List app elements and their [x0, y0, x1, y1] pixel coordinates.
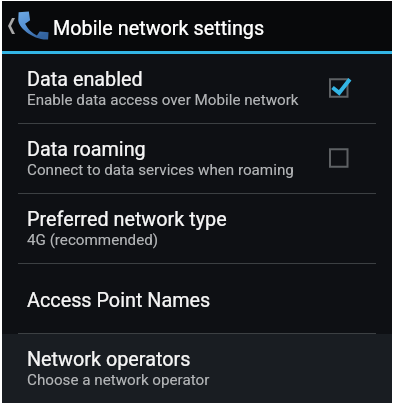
button[interactable]: Unchecked	[329, 146, 355, 172]
button[interactable]: Network operators	[2, 334, 392, 403]
staticText: 4G (recommended)	[27, 231, 159, 249]
button[interactable]: Checked	[329, 76, 355, 102]
staticText: Data enabled	[27, 68, 143, 91]
staticText: Choose a network operator	[27, 371, 210, 389]
staticText: Access Point Names	[27, 289, 211, 312]
staticText: Connect to data services when roaming	[27, 161, 294, 179]
button[interactable]: Data roaming	[2, 124, 392, 193]
staticText: Preferred network type	[27, 208, 227, 231]
staticText: Enable data access over Mobile network	[27, 91, 299, 109]
button[interactable]: Access Point Names	[2, 264, 392, 333]
button[interactable]: Navigate up	[2, 1, 49, 50]
staticText: Mobile network settings	[53, 17, 265, 40]
button[interactable]: Data enabled	[2, 54, 392, 123]
staticText: Data roaming	[27, 138, 146, 161]
staticText: Network operators	[27, 348, 191, 371]
button[interactable]: Preferred network type	[2, 194, 392, 263]
